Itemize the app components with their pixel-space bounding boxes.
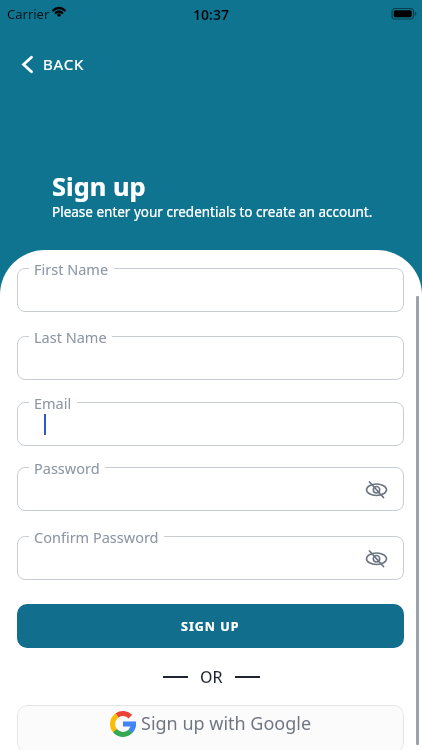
staticText: 10:37	[193, 5, 229, 24]
button[interactable]	[17, 336, 404, 380]
button[interactable]: BACK	[16, 48, 91, 80]
button[interactable]	[366, 548, 387, 569]
button[interactable]	[17, 402, 404, 446]
staticText: BACK	[43, 54, 85, 74]
staticText: Password	[34, 458, 100, 478]
staticText: Sign up	[52, 169, 146, 204]
staticText: Last Name	[34, 327, 107, 347]
staticText: Email	[34, 393, 72, 413]
staticText: Please enter your credentials to create …	[52, 203, 373, 221]
button[interactable]	[17, 536, 404, 580]
staticText: Confirm Password	[34, 527, 159, 547]
button[interactable]: SIGN UP	[17, 604, 404, 648]
button[interactable]	[17, 467, 404, 511]
button[interactable]	[366, 479, 387, 500]
button[interactable]	[17, 268, 404, 312]
staticText: First Name	[34, 259, 109, 279]
button[interactable]: Sign up with Google	[17, 705, 404, 750]
staticText: OR	[200, 666, 223, 688]
staticText: Sign up with Google	[141, 711, 312, 736]
staticText: Carrier	[7, 5, 50, 23]
staticText: SIGN UP	[181, 618, 240, 635]
